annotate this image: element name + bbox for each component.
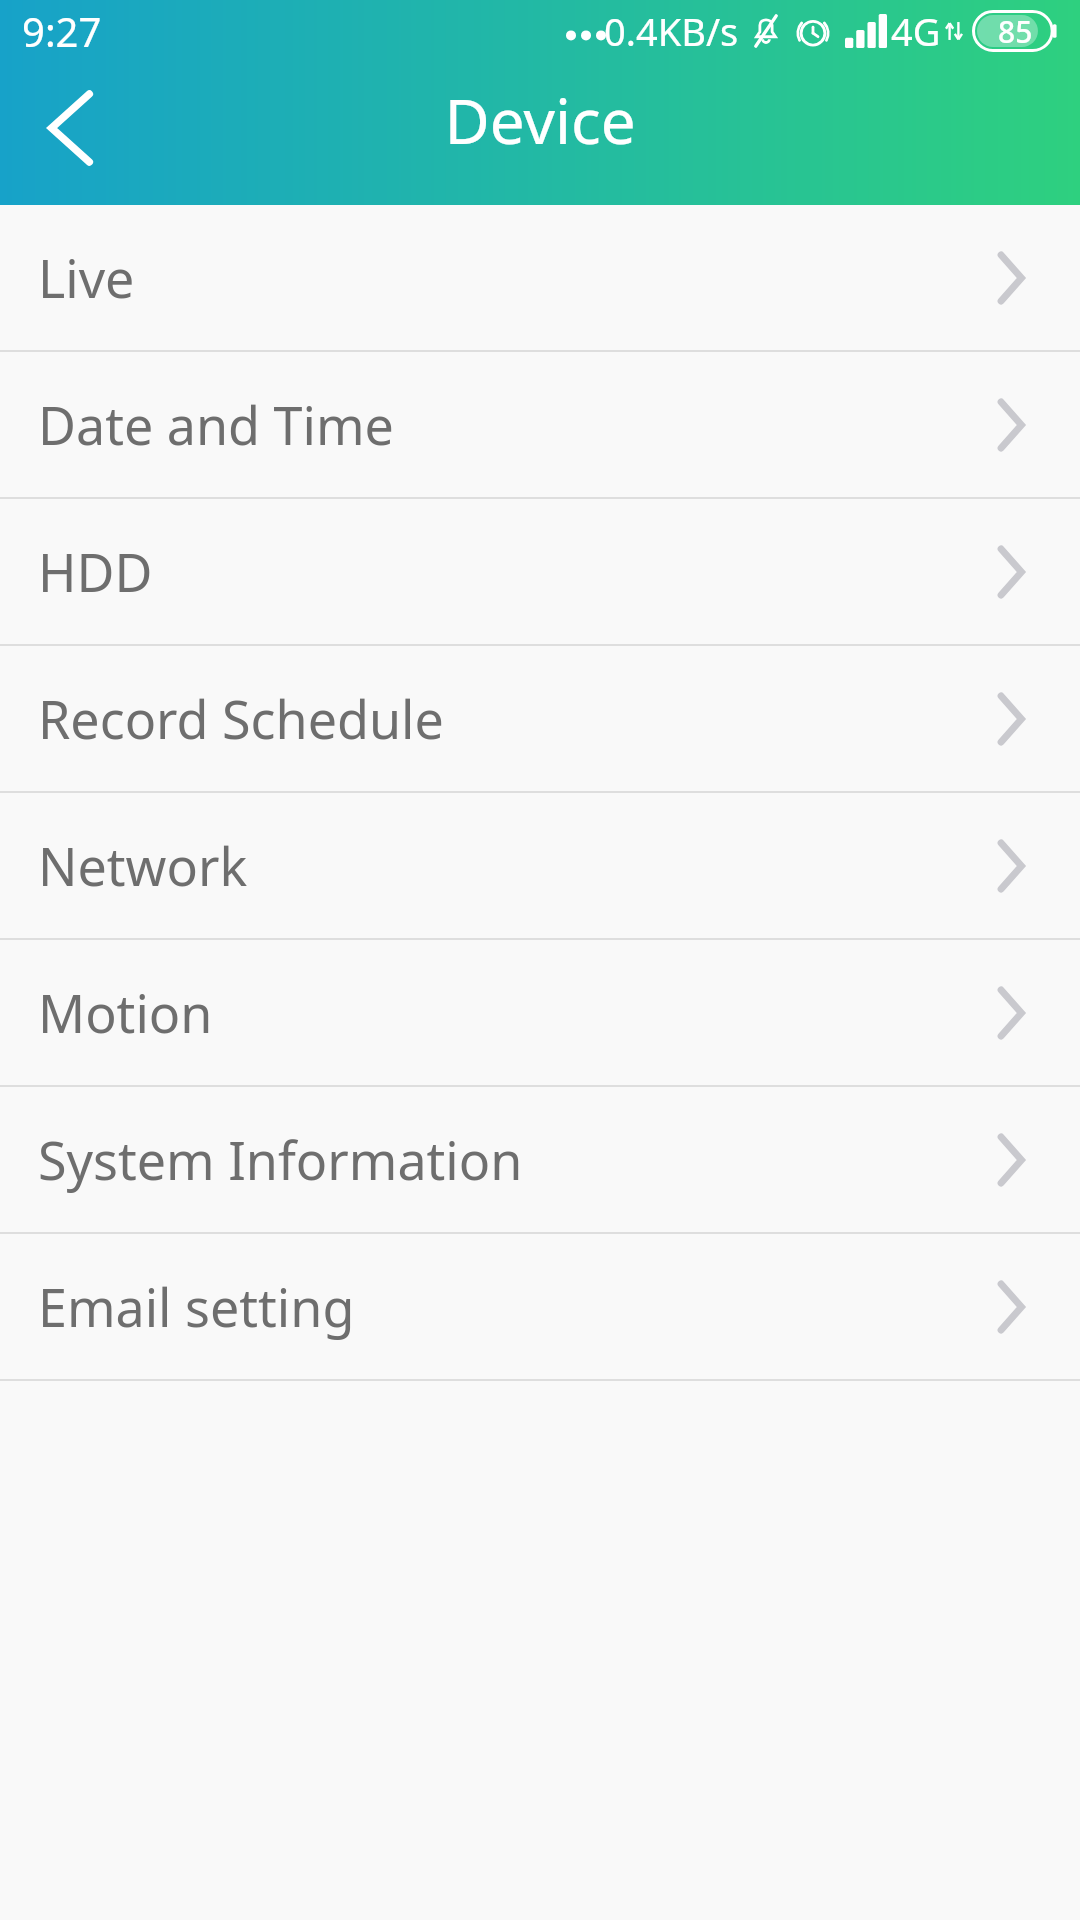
button[interactable]: Date and Time (0, 352, 1080, 497)
button[interactable]: Motion (0, 940, 1080, 1085)
staticText: System Information (38, 1124, 523, 1195)
staticText: HDD (38, 536, 153, 607)
staticText: Record Schedule (38, 683, 444, 754)
button[interactable]: HDD (0, 499, 1080, 644)
staticText: 9:27 (22, 4, 102, 58)
button[interactable]: Email setting (0, 1234, 1080, 1379)
staticText: 0.4KB/s (604, 5, 739, 57)
staticText: Live (38, 242, 135, 313)
button[interactable]: Back (20, 78, 120, 178)
staticText: 4G (891, 5, 941, 57)
button[interactable]: Record Schedule (0, 646, 1080, 791)
button[interactable]: System Information (0, 1087, 1080, 1232)
staticText: Device (0, 78, 1080, 162)
staticText: Date and Time (38, 389, 394, 460)
button[interactable]: Network (0, 793, 1080, 938)
staticText: Email setting (38, 1271, 355, 1342)
button[interactable]: Live (0, 205, 1080, 350)
staticText: Motion (38, 977, 213, 1048)
staticText: 85 (998, 11, 1033, 52)
staticText: Network (38, 830, 248, 901)
